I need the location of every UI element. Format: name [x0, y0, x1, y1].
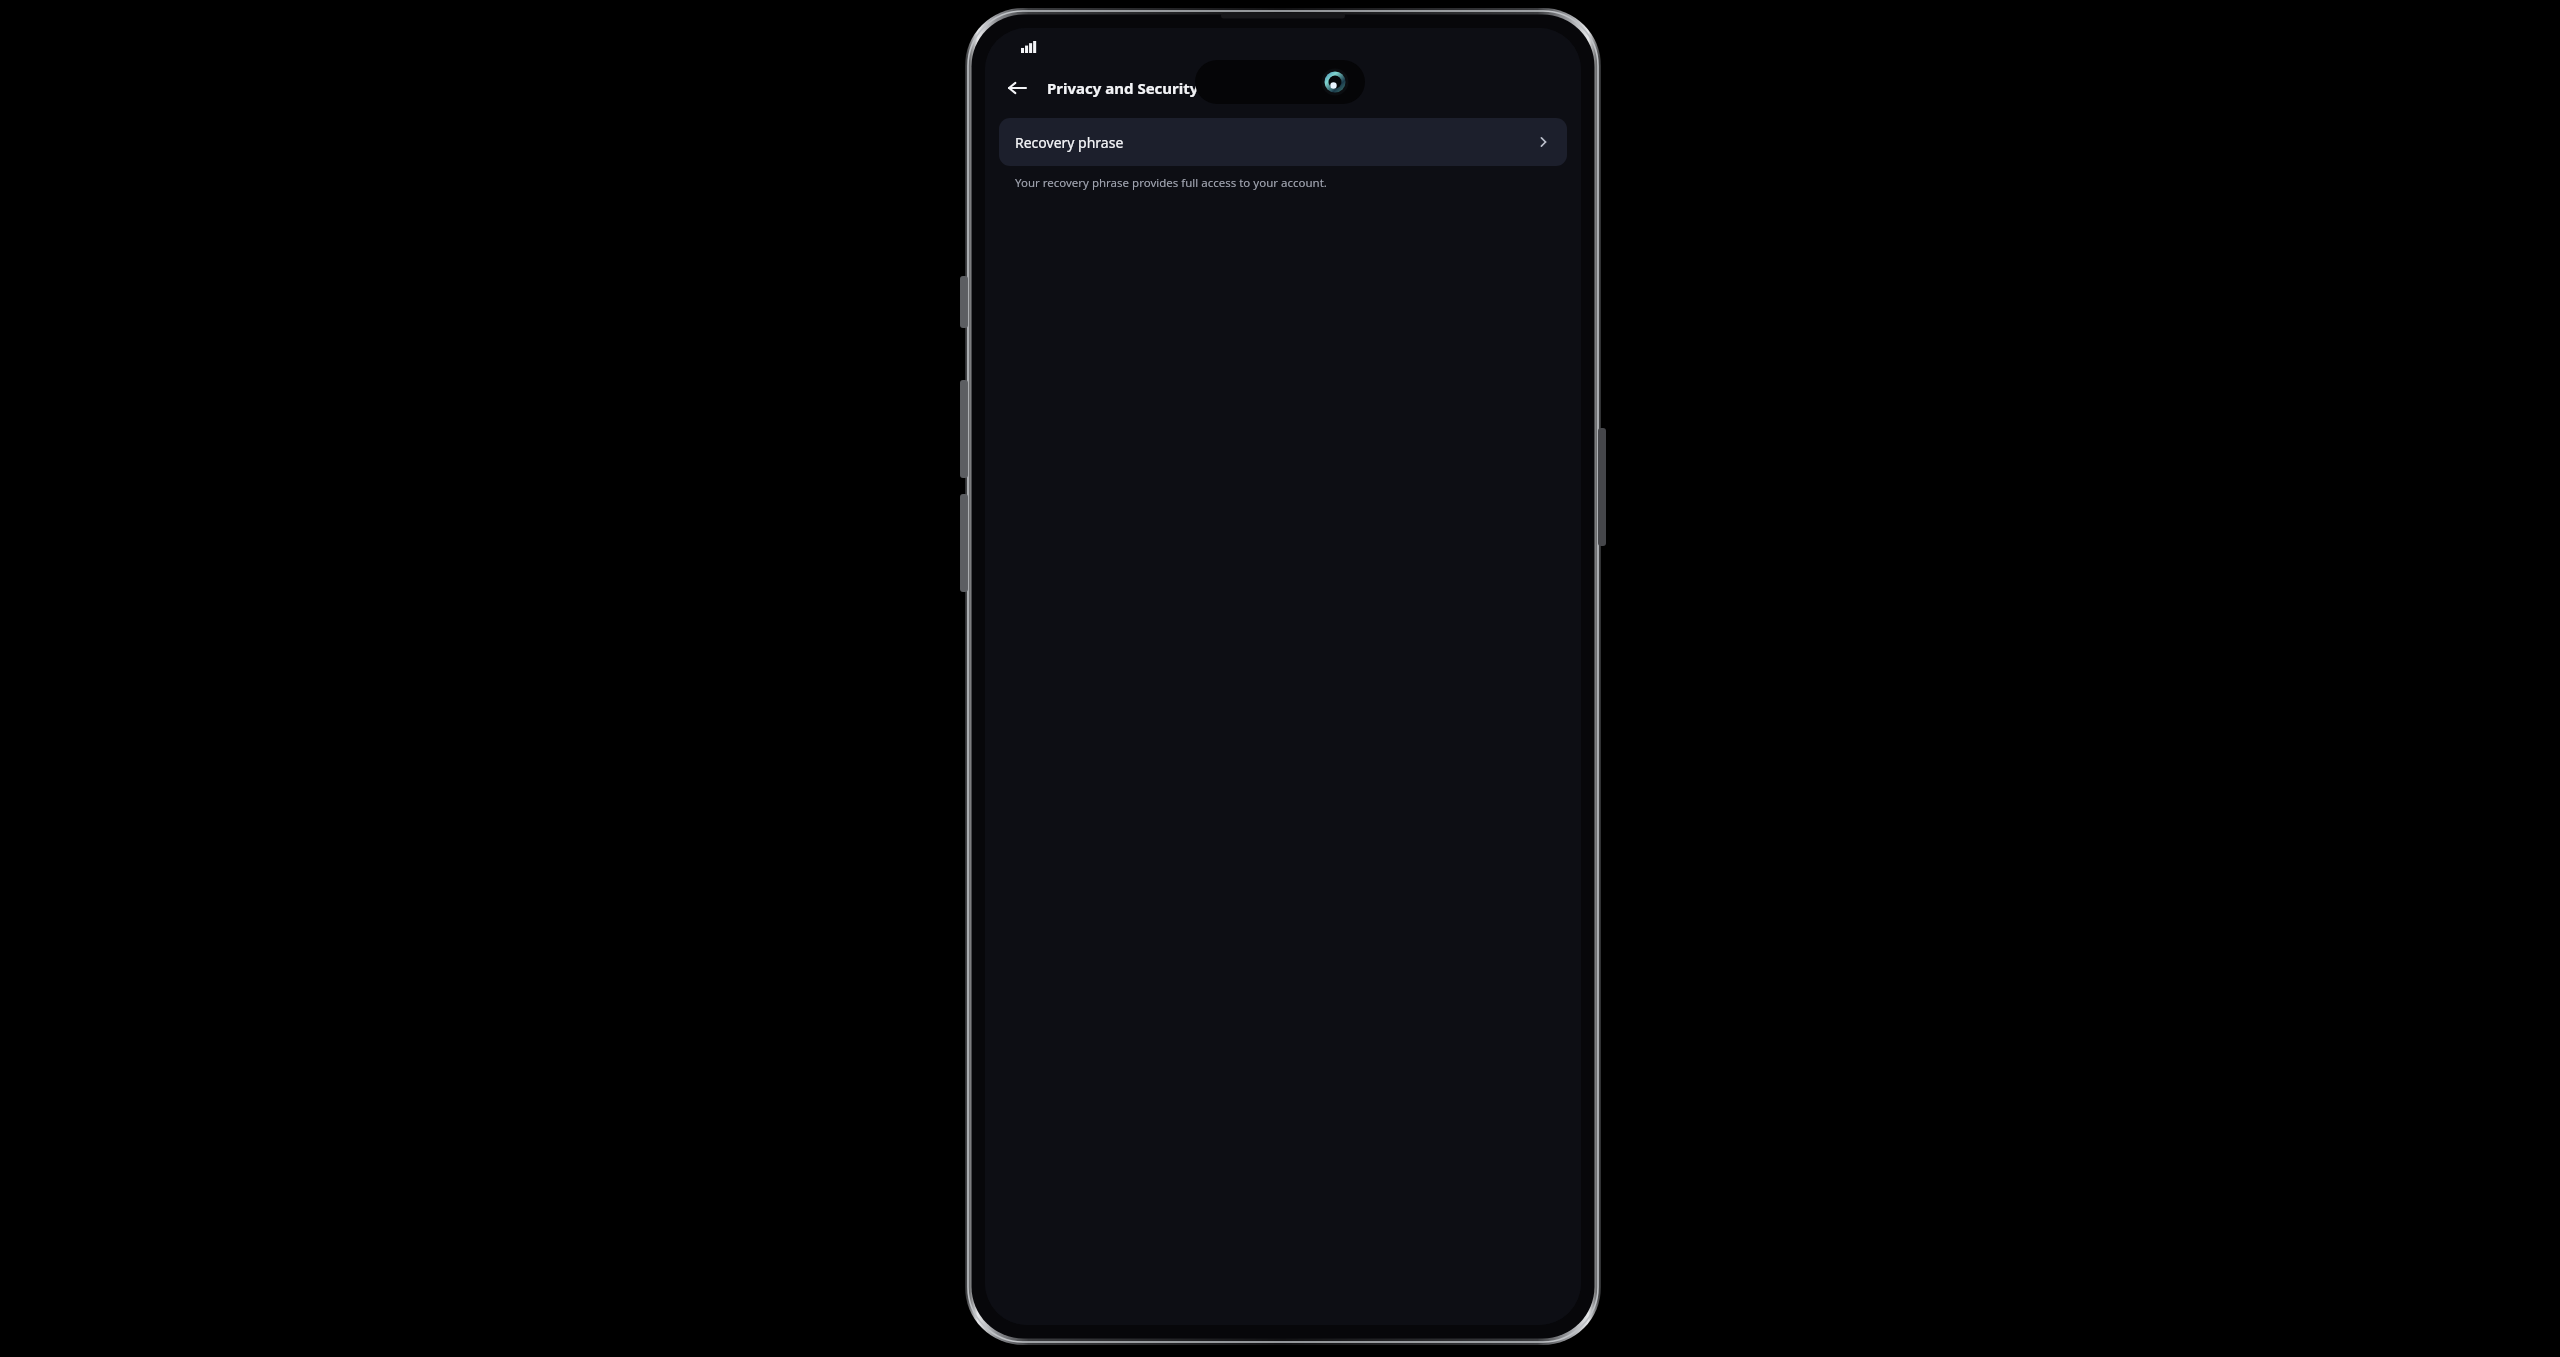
button[interactable]: Recovery phrase: [999, 118, 1567, 166]
staticText: Your recovery phrase provides full acces…: [1015, 175, 1327, 191]
staticText: Privacy and Security: [1047, 78, 1199, 98]
button[interactable]: Back: [995, 66, 1039, 110]
staticText: Recovery phrase: [1015, 133, 1124, 152]
